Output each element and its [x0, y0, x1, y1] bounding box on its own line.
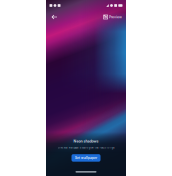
button[interactable]: Preview	[103, 13, 123, 21]
button[interactable]: Set wallpaper	[71, 154, 100, 162]
staticText: Give your wallpaper a subtle glow that r…	[57, 146, 114, 149]
staticText: Preview	[109, 15, 122, 19]
staticText: Set wallpaper	[75, 156, 97, 160]
button[interactable]: Back	[49, 11, 60, 22]
staticText: Neon shadows	[73, 139, 98, 143]
